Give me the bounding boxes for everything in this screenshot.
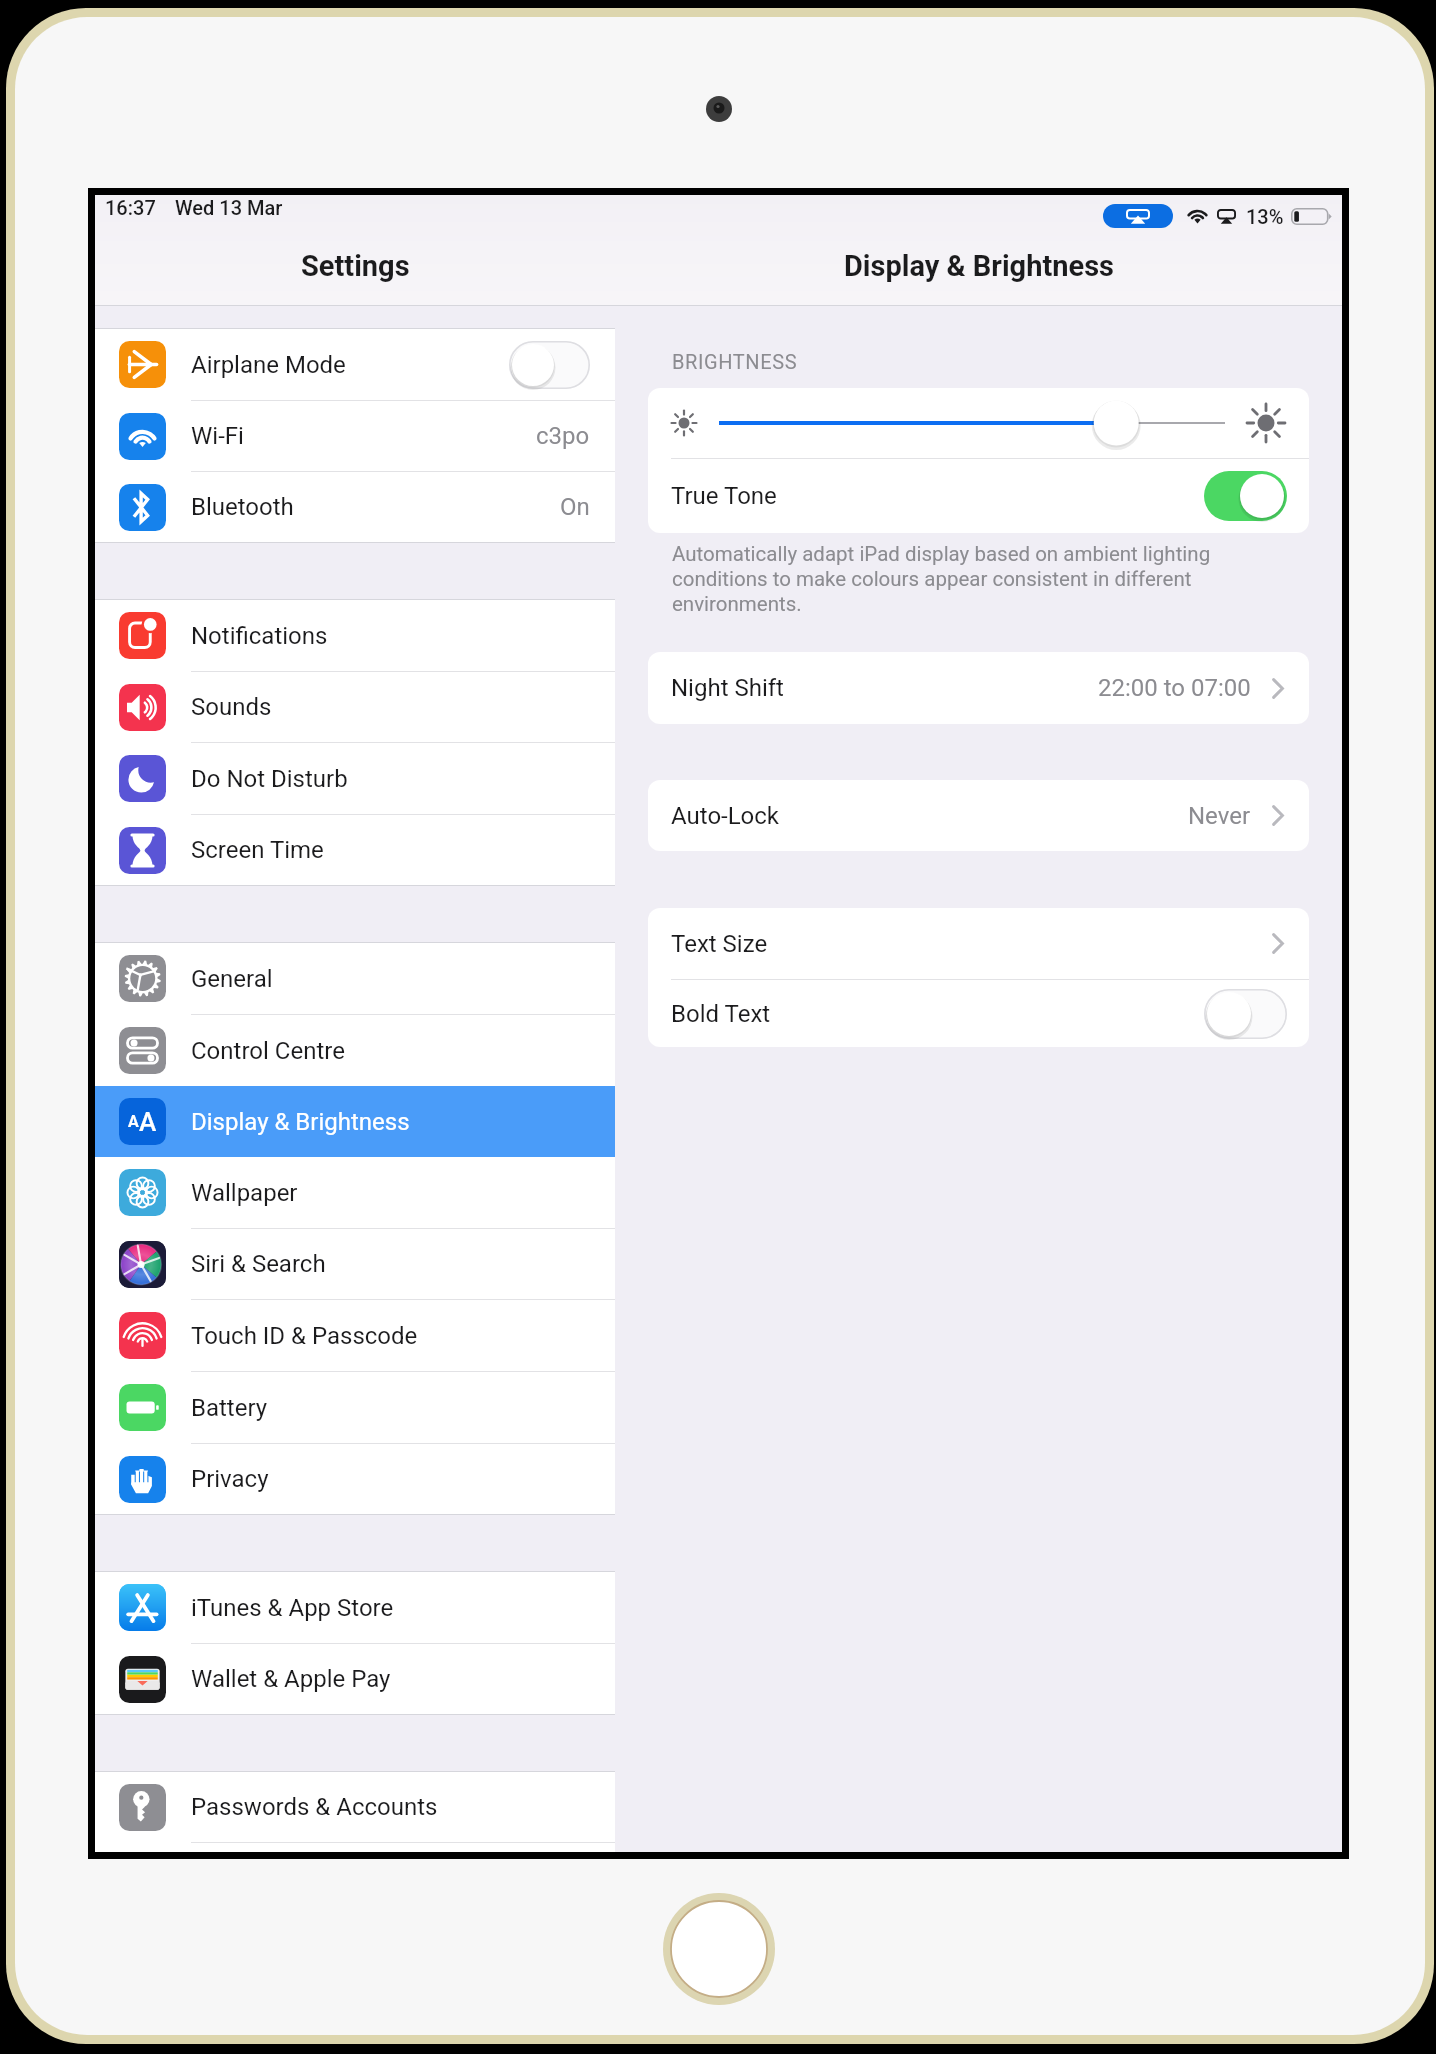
staticText: Never xyxy=(1188,802,1251,830)
button[interactable]: Toggle off xyxy=(509,341,590,389)
staticText: Text Size xyxy=(671,930,768,958)
staticText: Bluetooth xyxy=(191,493,294,521)
staticText: Control Centre xyxy=(191,1037,345,1065)
staticText: A xyxy=(128,1112,139,1131)
staticText: A xyxy=(139,1107,157,1137)
button[interactable]: Do Not Disturb xyxy=(95,743,615,814)
button[interactable]: Battery xyxy=(95,1372,615,1443)
button[interactable]: Home button xyxy=(662,1892,776,2006)
button[interactable]: Privacy xyxy=(95,1444,615,1514)
button[interactable]: Bluetooth xyxy=(95,472,615,542)
button[interactable]: General xyxy=(95,943,615,1014)
staticText: Wallet & Apple Pay xyxy=(191,1665,391,1693)
button[interactable]: Passwords & Accounts xyxy=(95,1772,615,1842)
button[interactable]: True Tone xyxy=(648,459,1309,533)
button[interactable]: Wallet & Apple Pay xyxy=(95,1644,615,1714)
button[interactable]: Brightness slider xyxy=(648,388,1309,458)
button[interactable]: Siri & Search xyxy=(95,1229,615,1299)
staticText: Touch ID & Passcode xyxy=(191,1322,418,1350)
staticText: Sounds xyxy=(191,693,272,721)
staticText: Battery xyxy=(191,1394,268,1422)
staticText: 16:37 xyxy=(105,196,156,219)
button[interactable]: Notifications xyxy=(95,600,615,671)
staticText: BRIGHTNESS xyxy=(672,350,798,373)
button[interactable]: Screen Time xyxy=(95,815,615,885)
button[interactable]: Night Shift xyxy=(648,652,1309,724)
staticText: Airplane Mode xyxy=(191,351,346,379)
staticText: Wi-Fi xyxy=(191,422,244,450)
staticText: Siri & Search xyxy=(191,1250,326,1278)
staticText: Settings xyxy=(301,249,410,283)
staticText: Notifications xyxy=(191,622,328,650)
staticText: Automatically adapt iPad display based o… xyxy=(672,542,1229,616)
button[interactable]: A xyxy=(95,1086,615,1157)
button[interactable]: Toggle on xyxy=(1204,471,1287,521)
button[interactable]: Auto-Lock xyxy=(648,780,1309,851)
staticText: Wallpaper xyxy=(191,1179,298,1207)
staticText: Display & Brightness xyxy=(844,249,1114,283)
staticText: Auto-Lock xyxy=(671,802,780,830)
staticText: Wed 13 Mar xyxy=(175,196,283,219)
button[interactable]: Airplane Mode xyxy=(95,329,615,400)
staticText: Display & Brightness xyxy=(191,1108,410,1136)
staticText: Privacy xyxy=(191,1465,269,1493)
button[interactable]: iTunes & App Store xyxy=(95,1572,615,1643)
staticText: General xyxy=(191,965,273,993)
staticText: iTunes & App Store xyxy=(191,1594,394,1622)
button[interactable]: Bold Text xyxy=(648,980,1309,1047)
staticText: Bold Text xyxy=(671,1000,771,1028)
staticText: 22:00 to 07:00 xyxy=(1098,674,1251,702)
staticText: 13% xyxy=(1246,205,1284,228)
button[interactable]: AirPlay active xyxy=(1103,204,1173,228)
staticText: True Tone xyxy=(671,482,777,510)
staticText: Screen Time xyxy=(191,836,324,864)
staticText: On xyxy=(560,493,590,521)
button[interactable]: Text Size xyxy=(648,908,1309,979)
staticText: Night Shift xyxy=(671,674,784,702)
button[interactable]: Wallpaper xyxy=(95,1157,615,1228)
staticText: Passwords & Accounts xyxy=(191,1793,438,1821)
button[interactable]: Sounds xyxy=(95,672,615,742)
button[interactable]: Control Centre xyxy=(95,1015,615,1086)
button[interactable]: Touch ID & Passcode xyxy=(95,1300,615,1371)
staticText: c3po xyxy=(536,422,590,450)
button[interactable]: Wi-Fi xyxy=(95,401,615,471)
staticText: Do Not Disturb xyxy=(191,765,348,793)
button[interactable]: Toggle off xyxy=(1204,989,1287,1039)
